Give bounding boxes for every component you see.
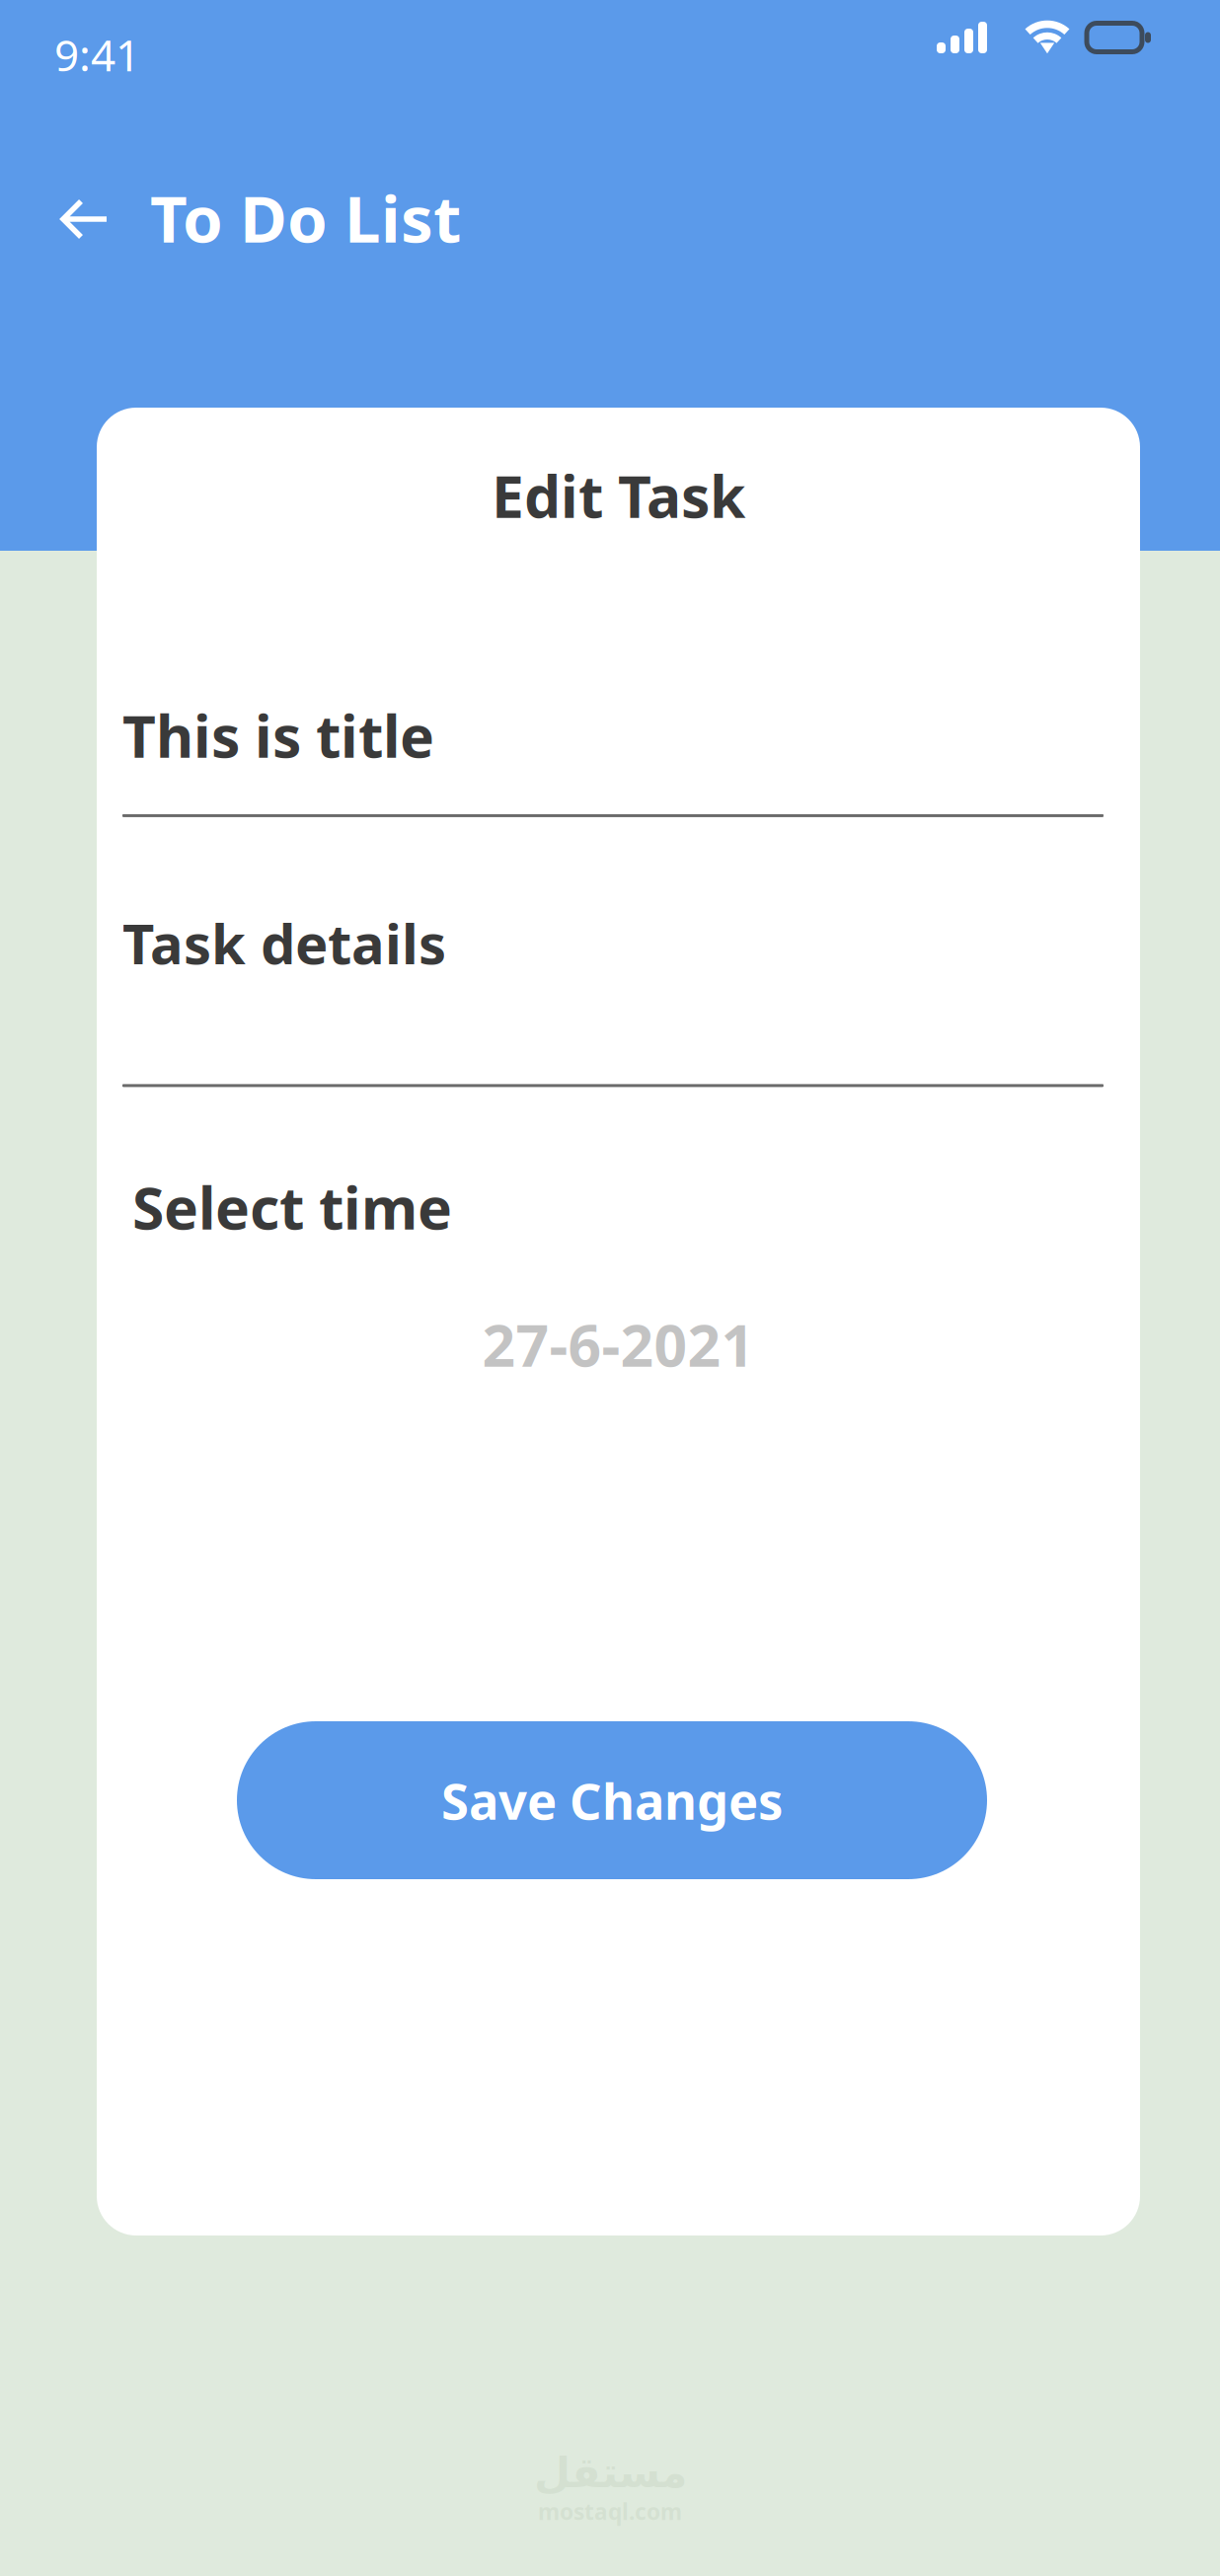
staticText: 27-6-2021 <box>482 1306 755 1383</box>
button[interactable]: To Do List <box>150 157 461 278</box>
staticText: Save Changes <box>441 1767 783 1834</box>
staticText: 9:41 <box>54 26 140 83</box>
button[interactable]: This is title <box>122 697 1104 817</box>
staticText: Task details <box>122 906 446 979</box>
staticText: مستقل <box>534 2449 686 2496</box>
button[interactable]: 27-6-2021 <box>97 1306 1140 1383</box>
button[interactable]: Back <box>32 172 138 266</box>
staticText: To Do List <box>150 175 461 260</box>
staticText: This is title <box>122 697 434 774</box>
staticText: Edit Task <box>492 457 745 534</box>
staticText: Select time <box>132 1169 452 1245</box>
button[interactable]: Save Changes <box>237 1721 987 1879</box>
button[interactable]: Task details <box>122 906 1104 1087</box>
staticText: mostaql.com <box>538 2496 682 2526</box>
